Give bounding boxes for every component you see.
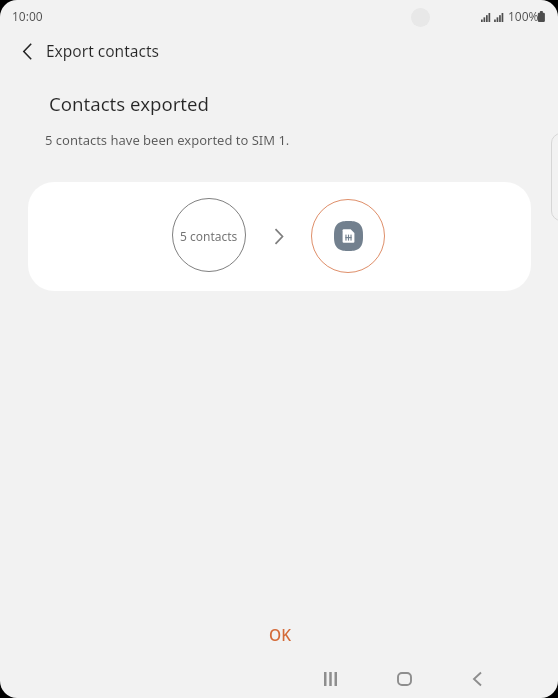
button[interactable]: Navigate up	[8, 32, 46, 70]
staticText: 5 contacts	[180, 228, 238, 244]
button[interactable]: Recent apps	[308, 658, 352, 698]
staticText: Export contacts	[46, 40, 159, 61]
staticText: 10:00	[12, 8, 43, 24]
staticText: OK	[269, 624, 291, 645]
button[interactable]: Back	[455, 658, 499, 698]
button[interactable]: 5 contacts	[28, 182, 531, 291]
staticText: 100%	[508, 8, 539, 24]
button[interactable]: Home	[382, 658, 426, 698]
staticText: Contacts exported	[49, 91, 209, 116]
staticText: 5 contacts have been exported to SIM 1.	[45, 131, 290, 149]
button[interactable]: OK	[244, 615, 316, 653]
